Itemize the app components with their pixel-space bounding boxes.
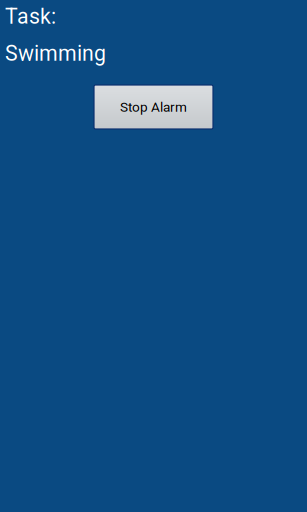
staticText: Swimming — [5, 41, 106, 66]
staticText: Stop Alarm — [120, 99, 187, 115]
staticText: Task: — [5, 4, 56, 29]
button[interactable]: Stop Alarm — [94, 85, 213, 129]
